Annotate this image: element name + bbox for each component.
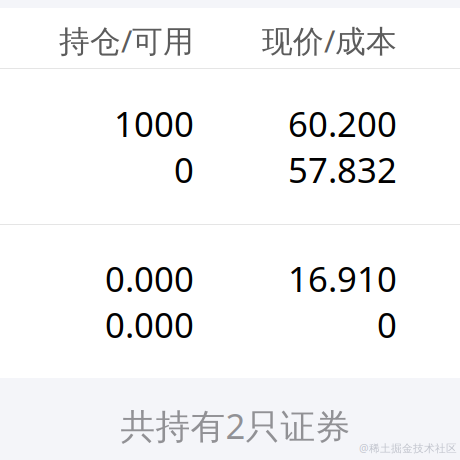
staticText: 57.832 [288,146,397,192]
staticText: 持仓/可用 [59,20,194,61]
staticText: @稀土掘金技术社区 [359,441,457,455]
staticText: 60.200 [288,100,397,146]
staticText: 共持有2只证券 [120,402,350,448]
staticText: 1000 [114,100,194,146]
button[interactable]: 1000 [0,69,460,224]
staticText: 0.000 [105,301,194,347]
button[interactable]: 0.000 [0,225,460,378]
staticText: 0.000 [105,255,194,301]
staticText: 0 [377,301,397,347]
staticText: 现价/成本 [262,20,397,61]
staticText: 0 [174,146,194,192]
staticText: 16.910 [288,255,397,301]
